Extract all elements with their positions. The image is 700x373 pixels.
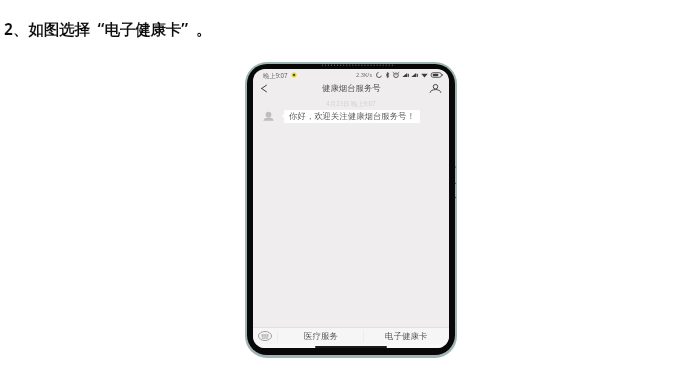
button[interactable]: 医疗服务	[278, 328, 363, 344]
staticText: 2.3K/s	[356, 71, 373, 79]
button[interactable]: 电子健康卡	[364, 328, 449, 344]
staticText: 你好，欢迎关注健康烟台服务号！	[289, 111, 415, 122]
button[interactable]: Keyboard	[253, 328, 277, 344]
staticText: 电子健康卡	[385, 331, 428, 342]
staticText: 晚上9:07	[263, 71, 288, 79]
staticText: 健康烟台服务号	[322, 83, 381, 94]
staticText: 2、如图选择 “电子健康卡” 。	[4, 19, 212, 40]
button[interactable]: Back	[258, 83, 269, 94]
staticText: 4月23日 晚上9:07	[253, 99, 449, 107]
staticText: 医疗服务	[304, 331, 338, 342]
button[interactable]: Contact profile	[430, 84, 441, 93]
button[interactable]: 你好，欢迎关注健康烟台服务号！	[284, 110, 420, 123]
